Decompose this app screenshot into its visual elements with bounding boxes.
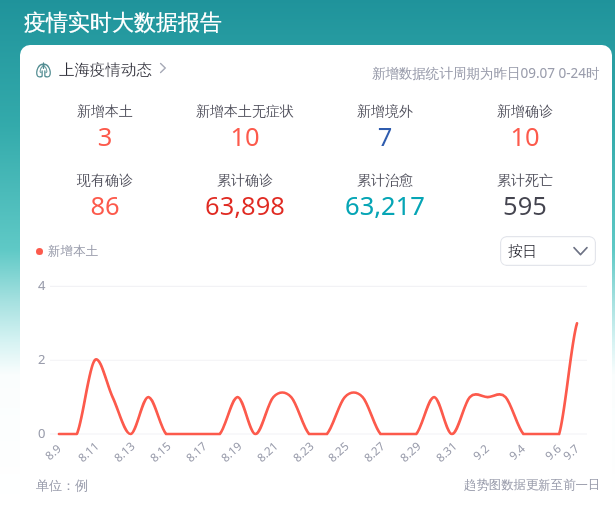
staticText: 新增境外 bbox=[315, 103, 455, 121]
staticText: 现有确诊 bbox=[35, 172, 175, 190]
staticText: 2 bbox=[38, 350, 46, 368]
staticText: 9.7 bbox=[560, 440, 583, 464]
staticText: 8.31 bbox=[433, 438, 460, 466]
button[interactable]: 新增本土 bbox=[36, 243, 98, 259]
staticText: 8.15 bbox=[147, 438, 174, 466]
staticText: 新增确诊 bbox=[455, 103, 595, 121]
staticText: 按日 bbox=[508, 242, 537, 260]
button[interactable]: 新增境外 bbox=[315, 103, 455, 163]
staticText: 8.11 bbox=[75, 438, 102, 466]
staticText: 10 bbox=[175, 119, 315, 154]
staticText: 8.17 bbox=[183, 438, 210, 466]
button[interactable]: 累计死亡 bbox=[455, 172, 595, 232]
staticText: 单位：例 bbox=[36, 477, 88, 493]
staticText: 7 bbox=[315, 119, 455, 154]
button[interactable]: 累计确诊 bbox=[175, 172, 315, 232]
staticText: 0 bbox=[38, 424, 46, 442]
staticText: 9.6 bbox=[542, 440, 565, 464]
button[interactable]: 累计治愈 bbox=[315, 172, 455, 232]
staticText: 86 bbox=[35, 188, 175, 223]
staticText: 63,898 bbox=[175, 188, 315, 223]
staticText: 595 bbox=[455, 188, 595, 223]
staticText: 8.25 bbox=[325, 438, 352, 466]
button[interactable]: 新增本土 bbox=[35, 103, 175, 163]
staticText: 9.2 bbox=[470, 440, 493, 464]
staticText: 新增数据统计周期为昨日09.07 0-24时 bbox=[372, 64, 600, 82]
staticText: 新增本土 bbox=[35, 103, 175, 121]
staticText: 8.13 bbox=[111, 438, 138, 466]
staticText: 疫情实时大数据报告 bbox=[24, 9, 222, 37]
staticText: 63,217 bbox=[315, 188, 455, 223]
staticText: 累计死亡 bbox=[455, 172, 595, 190]
staticText: 累计治愈 bbox=[315, 172, 455, 190]
button[interactable]: 上海疫情动态 bbox=[34, 58, 174, 80]
other: Expand period selector bbox=[574, 247, 587, 255]
staticText: 累计确诊 bbox=[175, 172, 315, 190]
staticText: 上海疫情动态 bbox=[59, 60, 152, 80]
staticText: 10 bbox=[455, 119, 595, 154]
staticText: 8.23 bbox=[290, 438, 317, 466]
staticText: 新增本土无症状 bbox=[175, 103, 315, 121]
staticText: 8.19 bbox=[218, 438, 245, 466]
button[interactable]: 新增确诊 bbox=[455, 103, 595, 163]
staticText: 3 bbox=[35, 119, 175, 154]
button[interactable]: 现有确诊 bbox=[35, 172, 175, 232]
staticText: 新增本土 bbox=[48, 243, 98, 259]
staticText: 8.21 bbox=[254, 438, 281, 466]
staticText: 4 bbox=[38, 276, 46, 294]
staticText: 9.4 bbox=[506, 440, 529, 464]
button[interactable]: 新增本土无症状 bbox=[175, 103, 315, 163]
staticText: 8.27 bbox=[361, 438, 388, 466]
staticText: 趋势图数据更新至前一日 bbox=[464, 477, 601, 493]
button[interactable]: 按日 bbox=[500, 236, 596, 266]
staticText: 8.9 bbox=[42, 440, 65, 464]
staticText: 8.29 bbox=[397, 438, 424, 466]
